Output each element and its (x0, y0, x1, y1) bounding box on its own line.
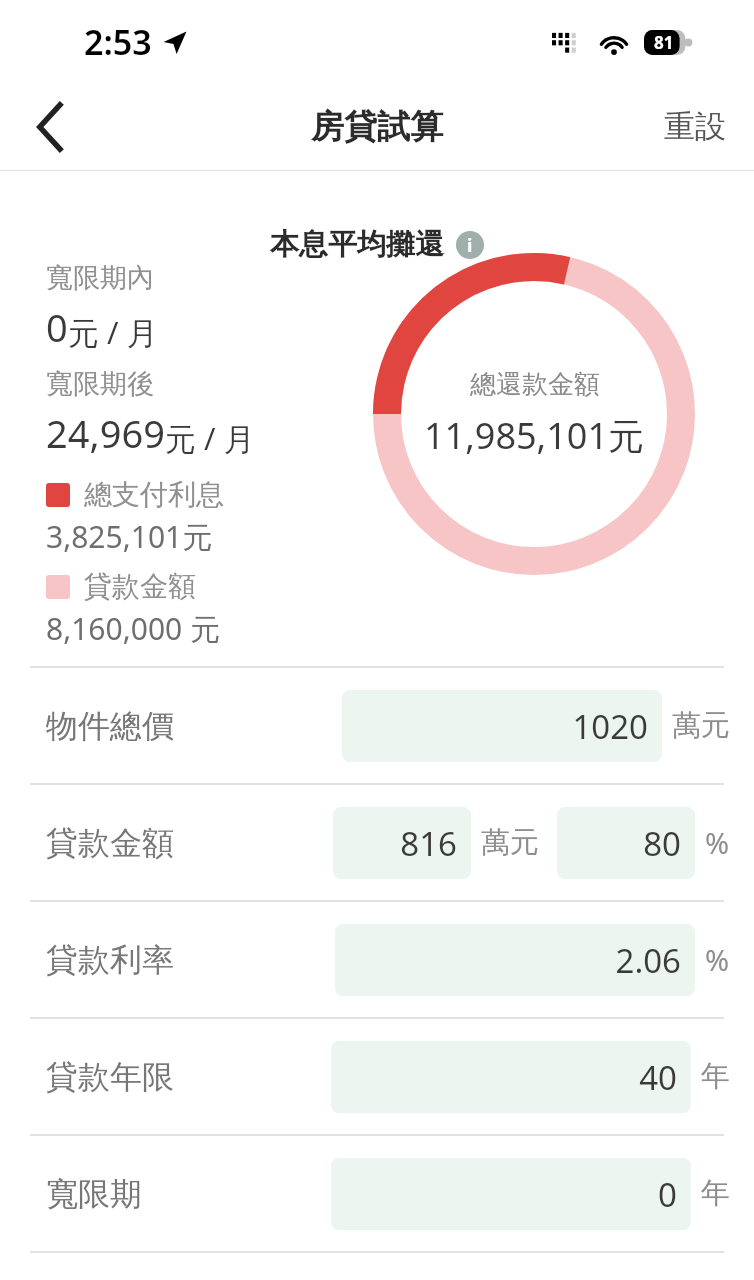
other: Info (456, 231, 484, 259)
staticText: 寬限期 (46, 1174, 142, 1214)
staticText: i (467, 233, 473, 258)
staticText: 11,985,101元 (424, 411, 645, 460)
button[interactable]: 本息平均攤還 (270, 226, 484, 263)
staticText: 816 (400, 821, 457, 866)
button[interactable]: 40 (331, 1041, 691, 1113)
staticText: 貸款年限 (46, 1057, 174, 1097)
button[interactable]: 816 (333, 807, 471, 879)
staticText: 重設 (664, 107, 726, 146)
staticText: 40 (639, 1055, 677, 1100)
staticText: 81 (654, 31, 674, 54)
staticText: 寬限期內 (46, 261, 154, 295)
staticText: 本息平均攤還 (270, 226, 444, 263)
staticText: 貸款金額 (46, 823, 174, 863)
staticText: 萬元 (672, 707, 730, 744)
staticText: 8,160,000 元 (46, 608, 220, 649)
staticText: 總支付利息 (84, 477, 224, 512)
staticText: 0 (46, 301, 68, 353)
staticText: 1020 (572, 704, 648, 749)
button[interactable]: 物件總價 (0, 668, 754, 783)
staticText: 0 (658, 1172, 677, 1217)
staticText: % (705, 940, 730, 979)
button[interactable]: 貸款利率 (0, 902, 754, 1017)
staticText: 萬元 (481, 824, 539, 861)
staticText: % (705, 823, 730, 862)
button[interactable]: 貸款金額 (0, 785, 754, 900)
button[interactable]: 80 (557, 807, 695, 879)
staticText: 2:53 (84, 19, 152, 65)
staticText: 房貸試算 (311, 106, 443, 148)
button[interactable]: 0 (331, 1158, 691, 1230)
button[interactable]: 1020 (342, 690, 662, 762)
staticText: 總還款金額 (470, 368, 600, 401)
staticText: 年 (701, 1175, 730, 1212)
staticText: 元 / 月 (165, 417, 255, 459)
staticText: 3,825,101元 (46, 516, 213, 557)
staticText: 年 (701, 1058, 730, 1095)
button[interactable]: 重設 (658, 99, 732, 154)
button[interactable]: 貸款年限 (0, 1019, 754, 1134)
staticText: 貸款利率 (46, 940, 174, 980)
staticText: 80 (643, 821, 681, 866)
staticText: 貸款金額 (84, 569, 196, 604)
staticText: 元 / 月 (68, 311, 158, 353)
button[interactable]: 2.06 (335, 924, 695, 996)
staticText: 物件總價 (46, 706, 174, 746)
button[interactable]: 寬限期 (0, 1136, 754, 1251)
staticText: 2.06 (615, 938, 681, 983)
button[interactable]: Back (20, 96, 82, 158)
staticText: 24,969 (46, 407, 165, 459)
staticText: 寬限期後 (46, 367, 154, 401)
